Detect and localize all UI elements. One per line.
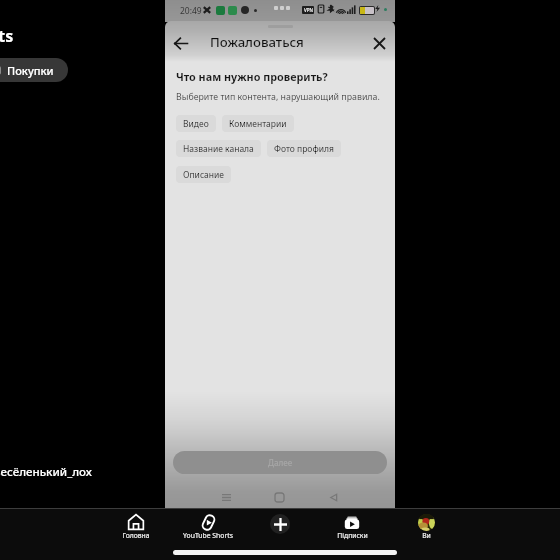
button[interactable]: Видео [176,115,216,132]
staticText: Головна [122,531,150,540]
staticText: Пожаловаться [210,33,304,51]
other: Home [128,514,144,530]
button[interactable]: Home [106,509,166,541]
staticText: Видео [183,118,209,130]
button[interactable]: Далее [173,451,387,474]
staticText: Описание [183,169,224,181]
staticText: Что нам нужно проверить? [176,69,328,84]
staticText: весёленький_лох [0,464,92,480]
staticText: Покупки [7,63,54,78]
button[interactable]: You [396,509,456,541]
button[interactable]: Shorts [178,509,238,541]
button[interactable]: Create [250,509,310,541]
staticText: Shorts [0,25,14,47]
button[interactable]: Back [168,30,194,56]
staticText: Далее [268,457,293,468]
button[interactable]: Фото профиля [267,140,341,157]
button[interactable]: Комментарии [222,115,294,132]
staticText: Выберите тип контента, нарушающий правил… [176,91,380,103]
staticText: Підписки [337,531,368,540]
other: You [418,514,435,531]
staticText: VPN [304,7,313,13]
staticText: Ви [422,531,431,540]
other: Subscriptions [344,514,360,530]
other: Create [270,514,290,534]
button[interactable]: Покупки [0,58,68,82]
button[interactable]: Close [367,31,391,55]
staticText: Название канала [183,143,254,155]
staticText: Комментарии [229,118,287,130]
button[interactable]: Описание [176,166,231,183]
other: Shorts [200,514,217,531]
staticText: 20:49 [180,5,202,17]
staticText: Фото профиля [274,143,334,155]
button[interactable]: Название канала [176,140,261,157]
staticText: YouTube Shorts [183,531,233,540]
button[interactable]: Subscriptions [322,509,382,541]
